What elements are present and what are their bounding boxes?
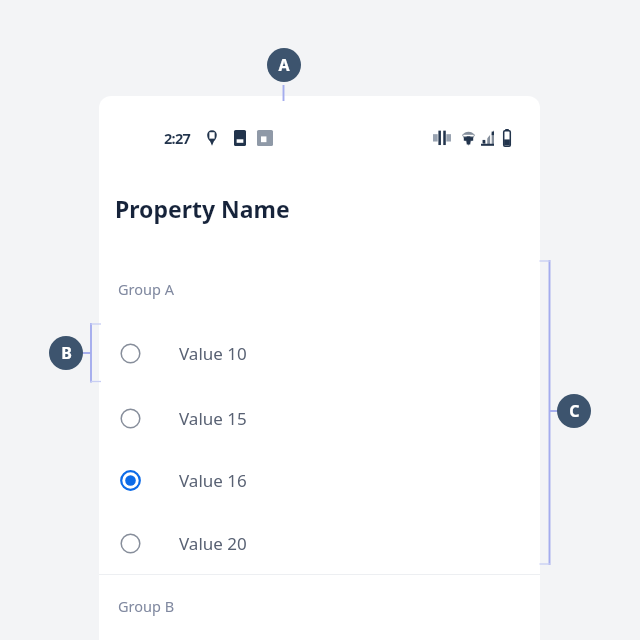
other: Location active xyxy=(206,130,218,146)
staticText: C xyxy=(569,400,580,422)
button[interactable]: Value 10 xyxy=(99,322,540,384)
other: Mobile signal xyxy=(481,130,494,146)
staticText: Value 20 xyxy=(179,532,247,555)
button[interactable]: Value 16 xyxy=(99,449,540,511)
other: Wi-Fi xyxy=(462,130,475,146)
staticText: B xyxy=(61,342,72,364)
staticText: Value 10 xyxy=(179,342,247,365)
staticText: Value 15 xyxy=(179,407,247,430)
other: Notification xyxy=(234,130,246,146)
other: Screenshot xyxy=(257,130,273,146)
staticText: 2:27 xyxy=(164,128,191,148)
button[interactable]: Annotation marker A xyxy=(267,48,301,82)
other: Vibrate mode xyxy=(433,130,451,146)
staticText: Property Name xyxy=(115,193,290,224)
other: Battery xyxy=(503,129,511,147)
staticText: Value 16 xyxy=(179,469,247,492)
button[interactable]: Annotation marker C xyxy=(557,394,591,428)
staticText: Group B xyxy=(118,596,175,616)
staticText: A xyxy=(278,54,290,76)
button[interactable]: Annotation marker B xyxy=(49,336,83,370)
staticText: Group A xyxy=(118,279,174,299)
button[interactable]: Value 15 xyxy=(99,387,540,449)
button[interactable]: Value 20 xyxy=(99,512,540,574)
